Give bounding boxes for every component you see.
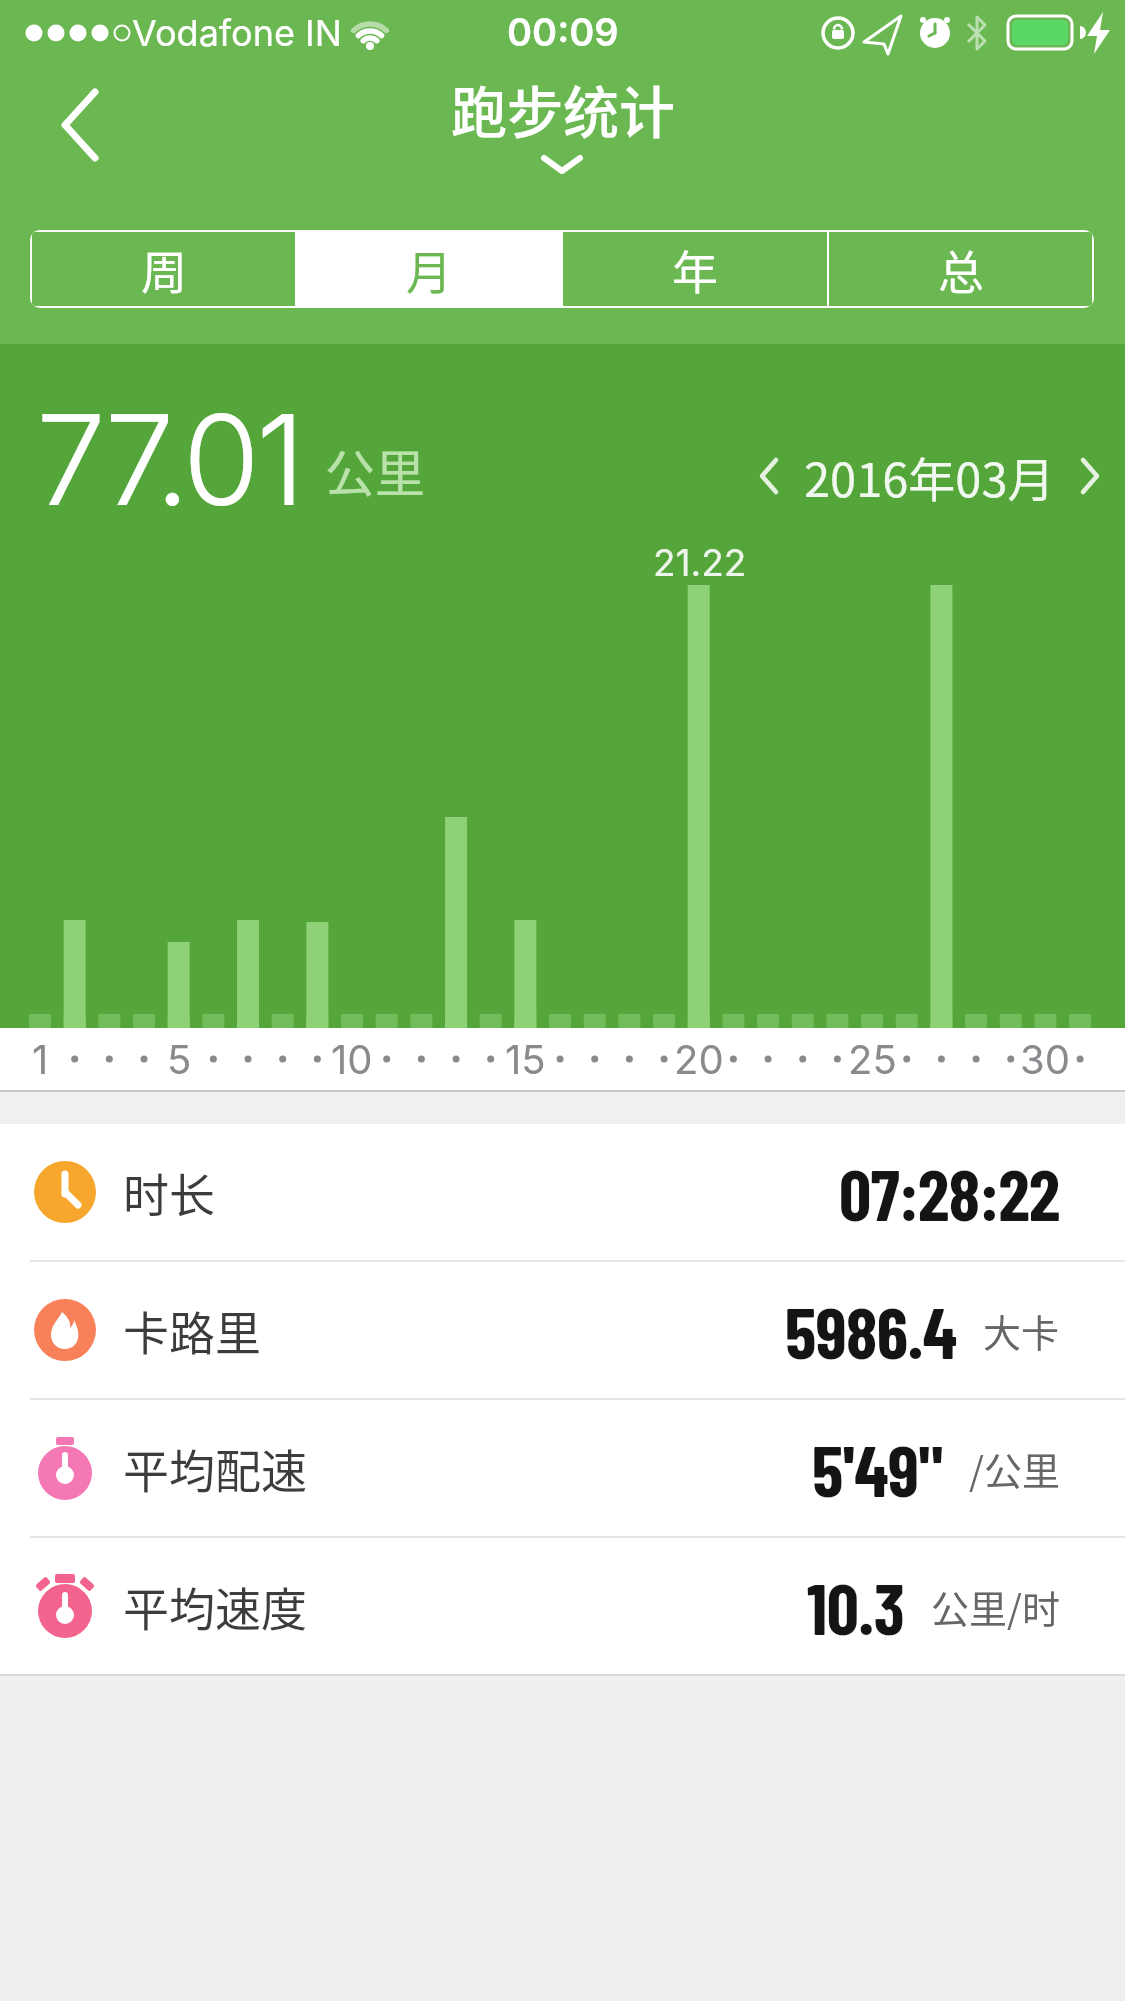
staticText: 07:28:22 [839, 1150, 1060, 1235]
staticText: 平均速度 [123, 1573, 307, 1640]
button[interactable] [744, 451, 794, 501]
staticText: 大卡 [983, 1303, 1060, 1358]
staticText: 5'49" [812, 1426, 943, 1511]
staticText: 5986.4 [785, 1288, 957, 1373]
staticText: 月 [406, 236, 452, 303]
staticText: 25 [848, 1035, 897, 1083]
staticText: 总 [938, 236, 984, 303]
button[interactable]: 总 [829, 232, 1092, 306]
button[interactable] [1065, 451, 1115, 501]
staticText: 平均配速 [123, 1435, 307, 1502]
staticText: 00:09 [507, 9, 619, 55]
button[interactable]: 周 [32, 232, 295, 306]
staticText: 30 [1020, 1035, 1070, 1083]
staticText: /公里 [969, 1441, 1060, 1496]
staticText: 20 [674, 1035, 724, 1083]
button[interactable]: 月 [297, 232, 561, 306]
staticText: 21.22 [653, 540, 747, 585]
button[interactable]: 平均速度 [0, 1538, 1125, 1674]
button[interactable]: 卡路里 [0, 1262, 1125, 1398]
staticText: 10 [331, 1035, 373, 1083]
staticText: 周 [141, 236, 187, 303]
staticText: 公里/时 [931, 1579, 1060, 1634]
staticText: 1 [32, 1035, 49, 1083]
staticText: 时长 [123, 1159, 215, 1226]
staticText: 年 [672, 236, 718, 303]
staticText: 77.01 [36, 384, 302, 535]
button[interactable]: 年 [563, 232, 827, 306]
staticText: 卡路里 [123, 1297, 261, 1364]
staticText: 公里 [325, 434, 425, 506]
staticText: 10.3 [807, 1564, 905, 1649]
staticText: 5 [167, 1035, 192, 1083]
staticText: 跑步统计 [451, 68, 675, 149]
staticText: Vodafone IN [132, 11, 342, 55]
staticText: 2016年03月 [804, 442, 1055, 510]
button[interactable] [40, 80, 130, 170]
button[interactable]: 时长 [0, 1124, 1125, 1260]
button[interactable]: 平均配速 [0, 1400, 1125, 1536]
staticText: 15 [505, 1035, 546, 1083]
